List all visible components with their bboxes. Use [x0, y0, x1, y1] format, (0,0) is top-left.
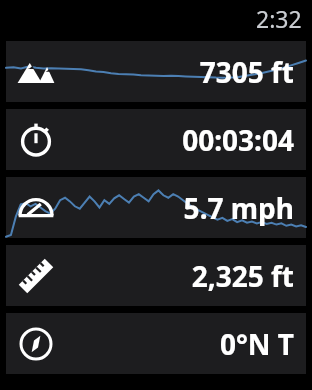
staticText: 0°N T	[219, 325, 294, 363]
button[interactable]: Speed	[6, 177, 306, 238]
staticText: 2:32	[256, 3, 302, 34]
staticText: 00:03:04	[182, 121, 294, 159]
staticText: 2,325 ft	[191, 257, 294, 295]
button[interactable]: Timer	[6, 109, 306, 170]
button[interactable]: Heading	[6, 313, 306, 374]
button[interactable]: Elevation	[6, 41, 306, 102]
staticText: 5.7 mph	[183, 189, 294, 227]
button[interactable]: Distance	[6, 245, 306, 306]
staticText: 7305 ft	[199, 53, 294, 91]
